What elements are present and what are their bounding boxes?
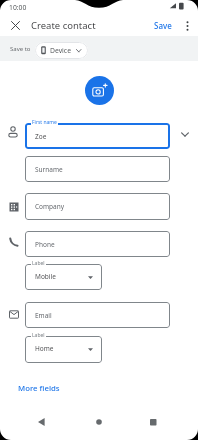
button[interactable] [9, 19, 22, 32]
button[interactable]: Home [25, 336, 102, 363]
staticText: Company [35, 202, 65, 211]
button[interactable] [92, 415, 106, 429]
button[interactable]: Phone [25, 231, 170, 257]
staticText: Create contact [31, 19, 96, 32]
button[interactable] [146, 415, 160, 429]
staticText: Save [154, 20, 172, 31]
staticText: Save to [10, 45, 31, 53]
staticText: First name [32, 119, 57, 126]
button[interactable] [34, 415, 48, 429]
button[interactable]: Email [25, 302, 170, 328]
button[interactable] [181, 20, 193, 32]
staticText: More fields [18, 383, 60, 394]
staticText: Mobile [35, 272, 56, 281]
staticText: 10:00 [9, 3, 27, 12]
button[interactable]: More fields [18, 383, 60, 394]
staticText: Surname [35, 165, 63, 174]
staticText: Email [35, 311, 52, 320]
staticText: Zoe [35, 132, 47, 141]
staticText: Device [50, 46, 71, 55]
button[interactable]: Surname [25, 156, 170, 182]
button[interactable] [85, 76, 114, 105]
button[interactable]: Zoe [25, 123, 170, 149]
staticText: Phone [35, 240, 55, 249]
button[interactable]: Device [35, 42, 88, 59]
button[interactable]: Save [150, 16, 176, 35]
staticText: Home [35, 344, 54, 353]
staticText: Label [32, 260, 45, 267]
staticText: Label [32, 332, 45, 339]
button[interactable]: Company [25, 193, 170, 220]
button[interactable]: Mobile [25, 264, 102, 290]
